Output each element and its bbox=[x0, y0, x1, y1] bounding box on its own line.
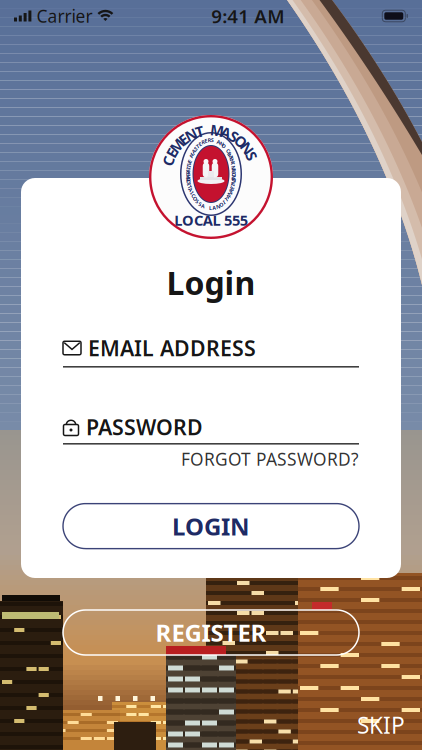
staticText: E bbox=[209, 196, 212, 203]
staticText: LOCAL 555 bbox=[174, 210, 248, 230]
button[interactable]: LOGIN bbox=[63, 504, 359, 549]
staticText: A bbox=[206, 120, 216, 140]
staticText: M bbox=[204, 120, 218, 140]
staticText: C bbox=[206, 120, 215, 140]
staticText: O bbox=[209, 203, 213, 210]
staticText: T bbox=[209, 140, 212, 147]
staticText: SKIP bbox=[357, 710, 405, 740]
staticText: E bbox=[207, 120, 215, 140]
button[interactable]: FORGOT PASSWORD? bbox=[63, 451, 359, 468]
staticText: N bbox=[209, 204, 213, 211]
staticText: REGISTER bbox=[155, 617, 266, 648]
staticText: A bbox=[209, 199, 213, 206]
staticText: A bbox=[209, 196, 213, 203]
staticText: R bbox=[209, 138, 212, 145]
staticText: O bbox=[205, 120, 217, 140]
staticText: LOGIN bbox=[172, 510, 250, 542]
staticText: A bbox=[209, 204, 213, 211]
staticText: S bbox=[207, 120, 215, 140]
staticText: A bbox=[209, 203, 213, 210]
staticText: S bbox=[209, 136, 212, 144]
staticText: N bbox=[209, 198, 213, 205]
staticText: I bbox=[210, 201, 212, 208]
staticText: Login bbox=[166, 261, 255, 304]
staticText bbox=[209, 120, 213, 140]
staticText: P bbox=[209, 144, 212, 151]
staticText: I bbox=[210, 197, 212, 204]
staticText: L bbox=[209, 143, 212, 150]
staticText: C bbox=[209, 142, 212, 149]
staticText: A bbox=[209, 137, 213, 145]
staticText bbox=[210, 137, 211, 144]
staticText: N bbox=[205, 120, 217, 140]
staticText: EMAIL ADDRESS bbox=[88, 334, 256, 362]
staticText: Carrier bbox=[36, 4, 92, 27]
staticText: PASSWORD bbox=[86, 413, 203, 441]
button[interactable]: SKIP bbox=[357, 710, 422, 750]
staticText: R bbox=[209, 136, 212, 144]
staticText: E bbox=[207, 120, 215, 140]
staticText: M bbox=[204, 120, 218, 140]
staticText bbox=[210, 145, 211, 152]
staticText bbox=[210, 204, 211, 211]
staticText: E bbox=[209, 137, 212, 144]
staticText: E bbox=[209, 143, 212, 150]
staticText: M bbox=[208, 144, 213, 151]
staticText: N bbox=[209, 138, 213, 145]
button[interactable]: REGISTER bbox=[63, 610, 359, 655]
staticText: T bbox=[209, 200, 212, 207]
staticText: N bbox=[209, 145, 213, 153]
staticText: 9:41 AM bbox=[211, 4, 284, 28]
staticText: S bbox=[209, 201, 212, 208]
staticText: R bbox=[209, 196, 212, 204]
staticText: T bbox=[207, 120, 215, 140]
staticText: D bbox=[209, 139, 213, 147]
staticText: S bbox=[207, 120, 215, 140]
staticText: FORGOT PASSWORD? bbox=[181, 448, 359, 471]
staticText bbox=[210, 141, 211, 148]
staticText: E bbox=[209, 145, 212, 152]
staticText: C bbox=[209, 198, 212, 206]
staticText: E bbox=[209, 139, 212, 146]
staticText: O bbox=[209, 200, 213, 207]
staticText: L bbox=[209, 204, 212, 212]
staticText: S bbox=[209, 141, 212, 148]
staticText: A bbox=[209, 142, 213, 149]
staticText: S bbox=[209, 202, 212, 209]
staticText: N bbox=[205, 120, 217, 140]
